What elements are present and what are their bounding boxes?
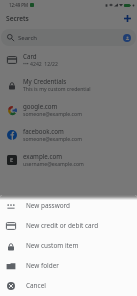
staticText: New credit or debit card <box>26 221 99 230</box>
button[interactable]: Card <box>0 47 137 72</box>
staticText: username@example.com <box>23 161 84 168</box>
button[interactable]: google.com <box>0 97 137 122</box>
button[interactable]: E <box>0 147 137 172</box>
button[interactable]: New credit or debit card <box>0 215 137 235</box>
staticText: ••• 4242 12/22 <box>23 61 58 68</box>
button[interactable]: New custom item <box>0 235 137 255</box>
button[interactable]: New folder <box>0 255 137 275</box>
staticText: google.com <box>23 102 58 110</box>
staticText: Search <box>18 34 37 42</box>
staticText: Cancel <box>26 281 46 290</box>
button[interactable]: New password <box>0 195 137 215</box>
staticText: Card <box>23 52 37 60</box>
staticText: New password <box>26 201 70 210</box>
staticText: someone@example.com <box>23 136 82 143</box>
staticText: facebook.com <box>23 127 64 135</box>
button[interactable]: Account <box>123 34 131 42</box>
staticText: someone@example.com <box>23 111 82 118</box>
button[interactable]: Search <box>1 29 136 46</box>
button[interactable]: facebook.com <box>0 122 137 147</box>
staticText: New folder <box>26 261 59 270</box>
staticText: This is my custom credential <box>23 86 91 93</box>
button[interactable]: Add <box>120 11 134 25</box>
staticText: New custom item <box>26 241 79 250</box>
staticText: example.com <box>23 152 62 160</box>
button[interactable]: My Credentials <box>0 72 137 97</box>
staticText: My Credentials <box>23 77 67 85</box>
staticText: Secrets <box>6 14 29 23</box>
button[interactable]: Cancel <box>0 275 137 295</box>
staticText: 12:49 PM <box>9 2 29 8</box>
staticText: E <box>10 156 14 164</box>
